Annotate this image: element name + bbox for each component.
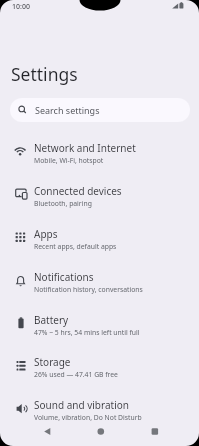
button[interactable]: Network and Internet: [0, 130, 199, 173]
staticText: Battery: [34, 313, 69, 327]
button[interactable]: [67, 418, 133, 442]
button[interactable]: Storage: [0, 344, 199, 387]
button[interactable]: Search settings: [10, 98, 190, 122]
button[interactable]: Battery: [0, 302, 199, 345]
staticText: Network and Internet: [34, 141, 136, 155]
staticText: 26% used — 47.41 GB free: [34, 370, 118, 379]
staticText: Bluetooth, pairing: [34, 199, 92, 208]
button[interactable]: Connected devices: [0, 173, 199, 216]
button[interactable]: [133, 418, 199, 442]
staticText: Mobile, Wi-Fi, hotspot: [34, 156, 104, 165]
button[interactable]: Apps: [0, 216, 199, 259]
button[interactable]: Sound and vibration: [0, 387, 199, 430]
staticText: Connected devices: [34, 184, 122, 198]
staticText: Search settings: [35, 104, 100, 116]
button[interactable]: Notifications: [0, 259, 199, 302]
staticText: Volume, vibration, Do Not Disturb: [34, 413, 142, 422]
button[interactable]: [0, 418, 67, 442]
staticText: Notifications: [34, 270, 94, 284]
staticText: Apps: [34, 227, 58, 241]
staticText: Recent apps, default apps: [34, 242, 117, 251]
staticText: Sound and vibration: [34, 398, 129, 412]
staticText: Storage: [34, 355, 71, 369]
staticText: Notification history, conversations: [34, 285, 143, 294]
staticText: 10:00: [12, 2, 30, 12]
staticText: 47% ~ 5 hrs, 54 mins left until full: [34, 328, 140, 337]
staticText: Settings: [11, 62, 78, 86]
